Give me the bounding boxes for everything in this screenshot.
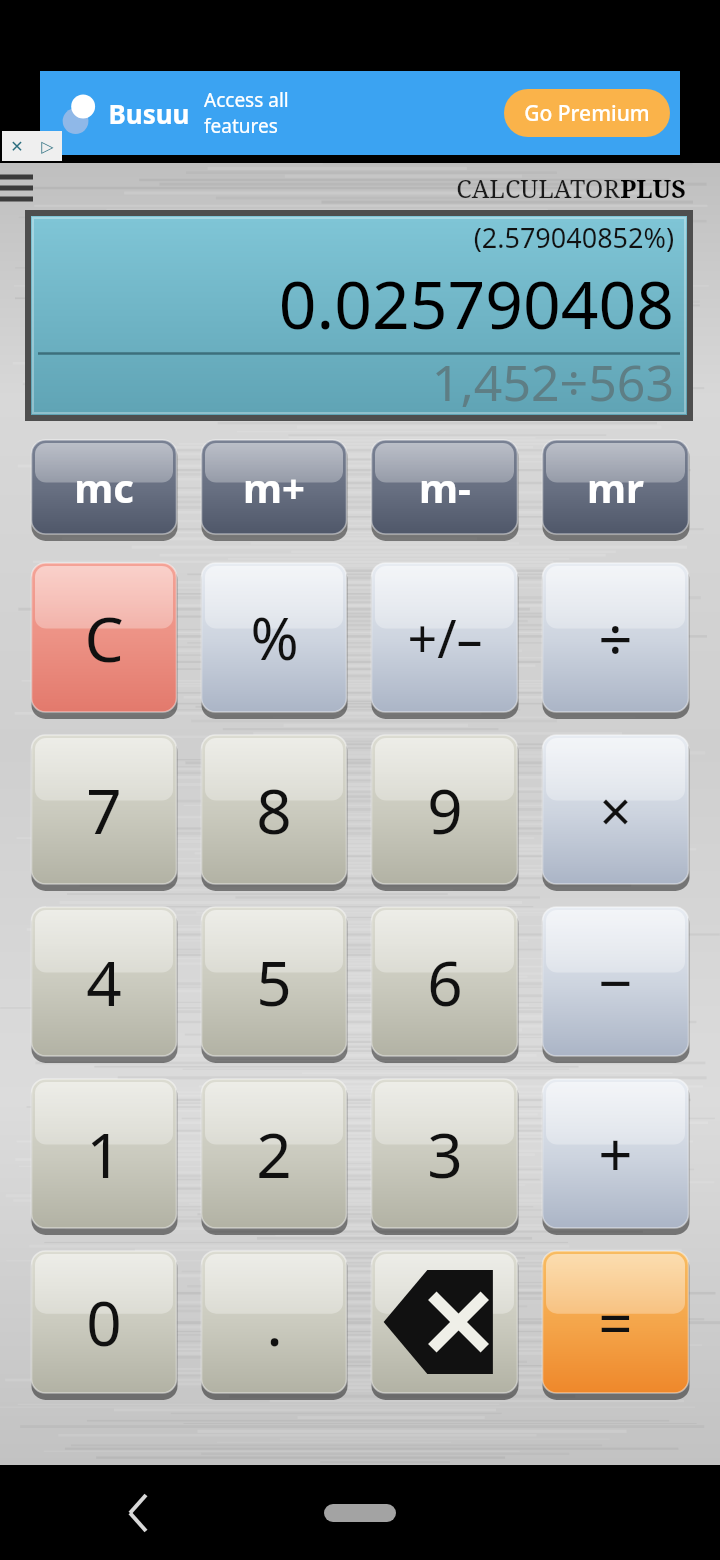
staticText: Busuu xyxy=(108,96,190,131)
button[interactable]: Home xyxy=(324,1504,396,1522)
button[interactable]: 8 xyxy=(200,735,348,890)
button[interactable]: m- xyxy=(370,440,519,540)
button[interactable]: = xyxy=(541,1251,690,1399)
button[interactable]: 7 xyxy=(30,735,178,890)
staticText: mc xyxy=(74,460,134,514)
button[interactable]: − xyxy=(541,907,690,1062)
button[interactable]: 5 xyxy=(200,907,348,1062)
button[interactable]: Back xyxy=(110,1485,166,1541)
button[interactable]: Go Premium xyxy=(504,89,670,137)
staticText: m+ xyxy=(243,460,305,514)
button[interactable]: . xyxy=(200,1251,348,1399)
button[interactable]: 0 xyxy=(30,1251,178,1399)
staticText: ✕ xyxy=(10,137,24,156)
staticText: ÷ xyxy=(598,597,633,679)
staticText: 0 xyxy=(86,1280,122,1364)
staticText: features xyxy=(204,113,278,139)
staticText: 6 xyxy=(427,940,463,1024)
staticText: 4 xyxy=(86,940,122,1024)
staticText: CALCULATOR xyxy=(456,171,620,205)
button[interactable]: C xyxy=(30,563,178,718)
button[interactable]: × xyxy=(541,735,690,890)
button[interactable]: 3 xyxy=(370,1079,519,1234)
staticText: (2.579040852%) xyxy=(473,219,674,256)
button[interactable]: Menu xyxy=(0,166,44,210)
button[interactable]: mc xyxy=(30,440,178,540)
staticText: . xyxy=(266,1280,283,1364)
staticText: 2 xyxy=(256,1112,292,1196)
staticText: 5 xyxy=(256,940,292,1024)
button[interactable]: 6 xyxy=(370,907,519,1062)
staticText: m- xyxy=(419,460,471,514)
staticText: × xyxy=(599,772,632,848)
button[interactable]: m+ xyxy=(200,440,348,540)
button[interactable]: 1 xyxy=(30,1079,178,1234)
staticText: 9 xyxy=(427,768,463,852)
button[interactable]: + xyxy=(541,1079,690,1234)
staticText: 0.025790408 xyxy=(278,258,674,348)
button[interactable]: 9 xyxy=(370,735,519,890)
staticText: 7 xyxy=(86,768,122,852)
button[interactable]: % xyxy=(200,563,348,718)
staticText: 1 xyxy=(86,1112,122,1196)
button[interactable]: ÷ xyxy=(541,563,690,718)
staticText: C xyxy=(84,596,124,680)
staticText: PLUS xyxy=(620,171,686,205)
button[interactable]: 2 xyxy=(200,1079,348,1234)
staticText: − xyxy=(598,941,633,1023)
button[interactable]: Backspace xyxy=(370,1251,519,1399)
staticText: Access all xyxy=(204,87,289,113)
button[interactable]: +/– xyxy=(370,563,519,718)
button[interactable]: mr xyxy=(541,440,690,540)
staticText: 1,452÷563 xyxy=(431,348,674,416)
staticText: +/– xyxy=(407,602,483,673)
button[interactable]: Busuu xyxy=(40,71,680,155)
staticText: ▷ xyxy=(41,137,54,156)
staticText: mr xyxy=(587,460,644,514)
button[interactable]: (2.579040852%) xyxy=(28,213,690,418)
staticText: 3 xyxy=(427,1112,463,1196)
staticText: 8 xyxy=(256,768,292,852)
staticText: = xyxy=(598,1281,633,1363)
staticText: % xyxy=(250,598,299,677)
staticText: Go Premium xyxy=(524,99,650,128)
button[interactable]: 4 xyxy=(30,907,178,1062)
staticText: + xyxy=(598,1113,633,1195)
